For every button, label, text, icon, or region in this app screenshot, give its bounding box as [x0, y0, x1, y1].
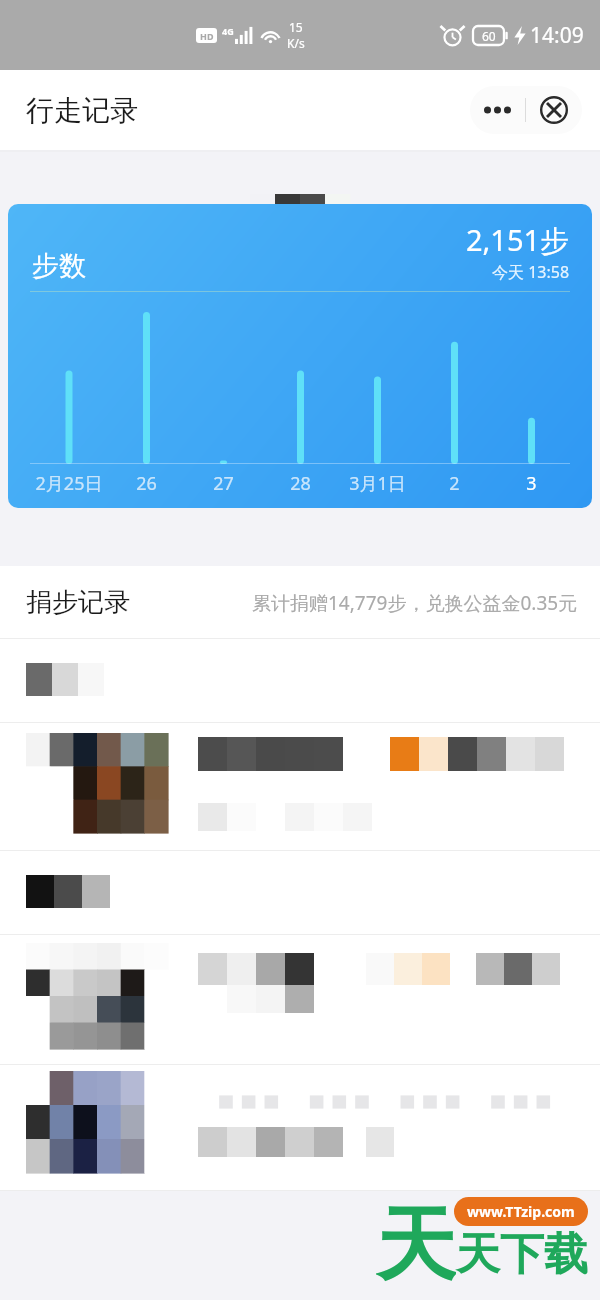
staticText: 14:09 — [530, 21, 584, 50]
staticText: K/s — [287, 35, 305, 51]
button[interactable] — [0, 639, 600, 723]
staticText: 60 — [482, 28, 496, 44]
staticText: 2 — [416, 471, 493, 496]
staticText: 步数 — [32, 249, 86, 283]
staticText: 2,151步 — [466, 220, 570, 260]
button[interactable] — [0, 851, 600, 935]
staticText: 2月25日 — [30, 471, 108, 496]
button[interactable]: Close — [526, 86, 582, 134]
staticText: 27 — [185, 471, 262, 496]
staticText: 4G — [222, 25, 234, 37]
staticText: 3月1日 — [339, 471, 416, 496]
staticText: 3 — [493, 471, 570, 496]
button[interactable] — [0, 1065, 600, 1191]
staticText: 天下载 — [456, 1227, 588, 1282]
button[interactable]: More options — [470, 86, 525, 134]
button[interactable] — [0, 723, 600, 851]
staticText: 天 — [376, 1195, 456, 1290]
button[interactable]: 捐步记录 — [0, 566, 600, 639]
button[interactable]: 步数 — [8, 204, 592, 508]
staticText: 26 — [108, 471, 185, 496]
staticText: 今天 13:58 — [492, 261, 570, 283]
button[interactable] — [0, 935, 600, 1065]
staticText: 捐步记录 — [26, 586, 130, 619]
staticText: www.TTzip.com — [467, 1202, 575, 1221]
staticText: 行走记录 — [26, 93, 138, 128]
staticText: 累计捐赠14,779步，兑换公益金0.35元 — [252, 590, 578, 616]
staticText: 15 — [289, 19, 303, 35]
staticText: 28 — [262, 471, 339, 496]
staticText: HD — [200, 30, 214, 42]
